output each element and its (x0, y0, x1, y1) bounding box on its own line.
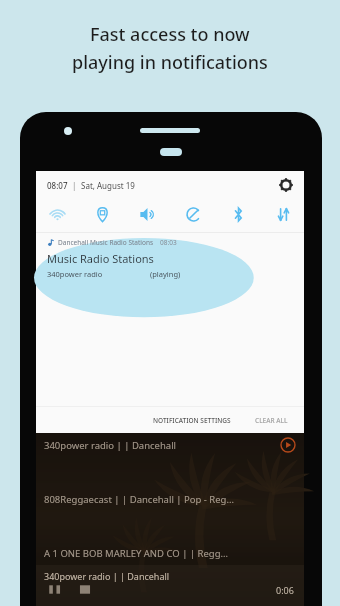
button[interactable]: Play (280, 437, 296, 453)
button[interactable]: Pause (46, 582, 64, 597)
button[interactable]: Bluetooth (223, 199, 253, 229)
button[interactable]: 808Reggaecast | | Dancehall | Pop - Reg… (36, 487, 304, 511)
button[interactable]: Dancehall Music Radio Stations (36, 233, 304, 295)
staticText: Fast access to now (90, 22, 250, 47)
button[interactable]: 340power radio | | Dancehall (36, 433, 304, 457)
button[interactable]: NOTIFICATION SETTINGS (149, 412, 235, 429)
staticText: 340power radio | | Dancehall (44, 439, 280, 452)
staticText: 08:03 (160, 238, 177, 247)
staticText: | (72, 180, 77, 191)
staticText: (playing) (150, 269, 181, 279)
button[interactable]: Sound (132, 199, 162, 229)
staticText: playing in notifications (72, 50, 268, 75)
button[interactable]: Auto rotate (178, 199, 208, 229)
staticText: Music Radio Stations (47, 251, 154, 266)
staticText: A 1 ONE BOB MARLEY AND CO | | Regg… (44, 547, 296, 560)
button[interactable]: Mobile data (268, 199, 298, 229)
button[interactable]: CLEAR ALL (251, 412, 292, 429)
staticText: Dancehall Music Radio Stations (58, 238, 154, 247)
staticText: NOTIFICATION SETTINGS (153, 416, 231, 425)
staticText: 0:06 (276, 584, 294, 596)
button[interactable]: A 1 ONE BOB MARLEY AND CO | | Regg… (36, 541, 304, 565)
button[interactable]: Wi-Fi (42, 199, 72, 229)
staticText: 808Reggaecast | | Dancehall | Pop - Reg… (44, 493, 296, 506)
button[interactable]: Location (87, 199, 117, 229)
staticText: Sat, August 19 (81, 180, 135, 191)
staticText: 08:07 (47, 180, 68, 191)
staticText: CLEAR ALL (255, 416, 288, 425)
staticText: 340power radio (47, 269, 103, 279)
button[interactable]: Settings (278, 177, 294, 193)
button[interactable]: Stop (76, 582, 94, 597)
staticText: 340power radio | | Dancehall (44, 570, 170, 582)
